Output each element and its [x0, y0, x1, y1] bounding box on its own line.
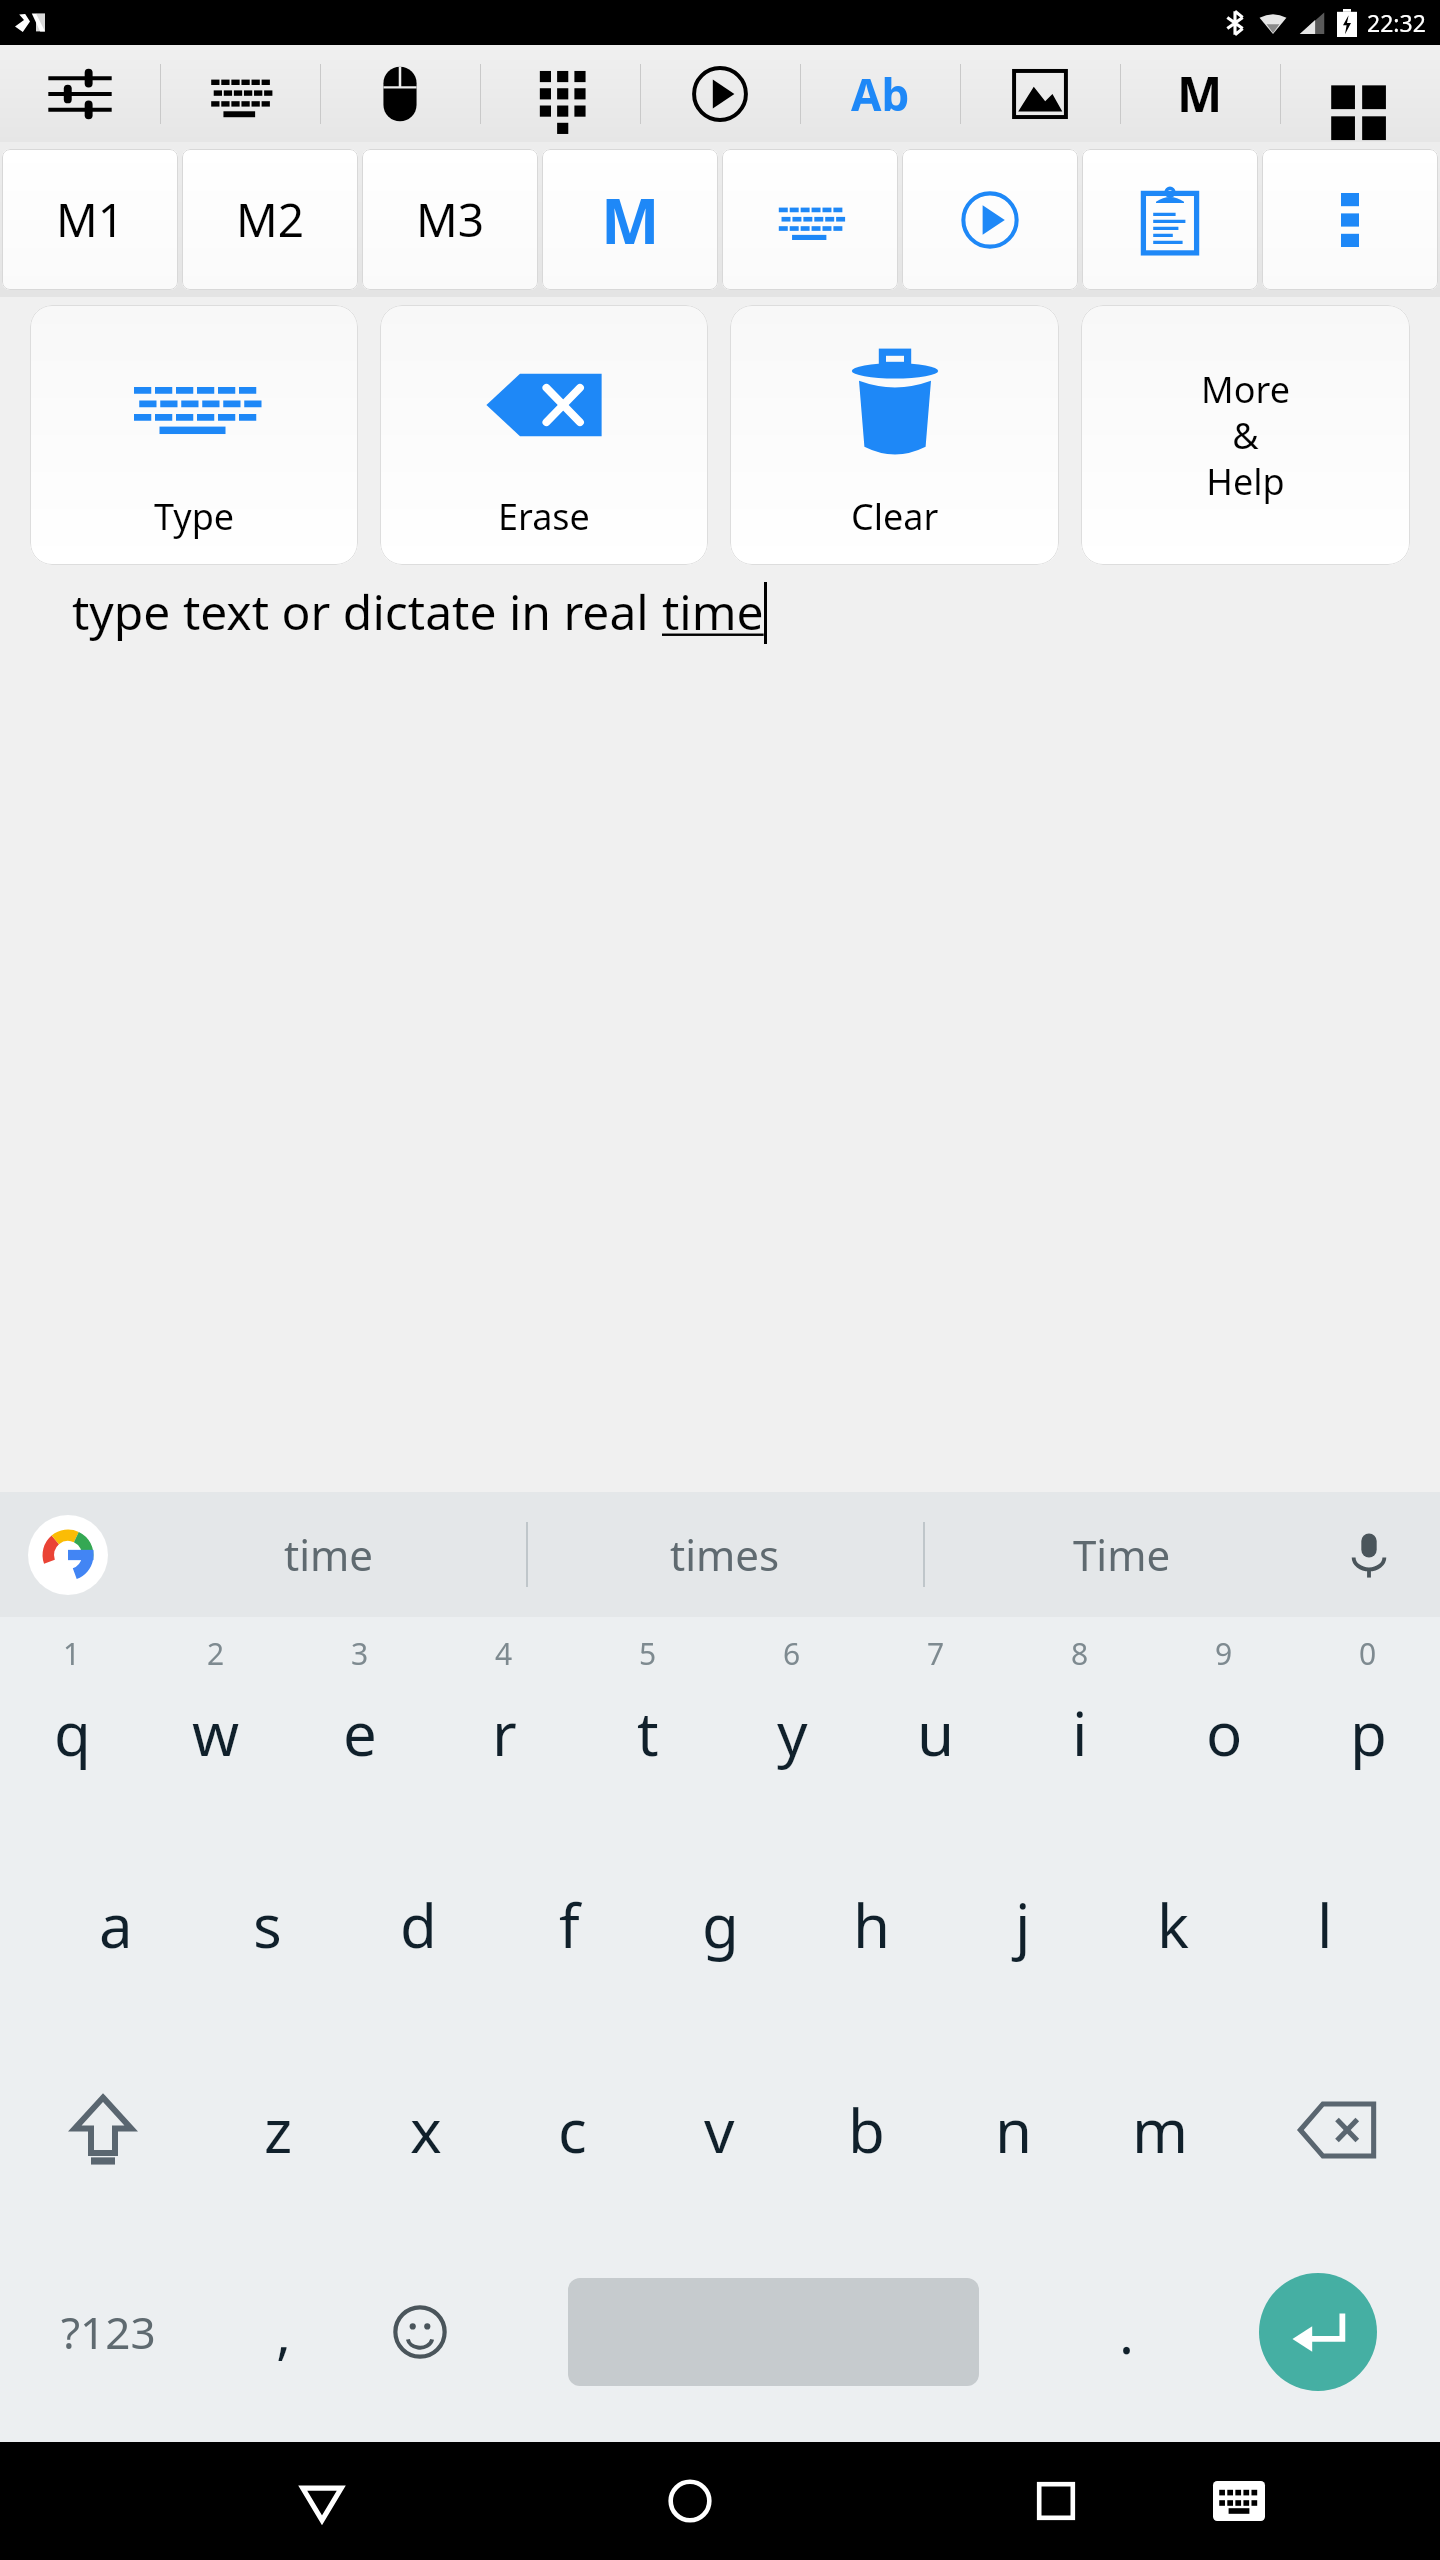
- button[interactable]: 9: [1152, 1617, 1296, 1822]
- staticText: ,: [276, 2294, 292, 2370]
- staticText: c: [558, 2089, 587, 2171]
- button[interactable]: Macro: [542, 149, 718, 290]
- button[interactable]: d: [343, 1822, 494, 2027]
- staticText: g: [702, 1884, 739, 1966]
- button[interactable]: b: [793, 2027, 940, 2232]
- button[interactable]: Switch keyboard: [1147, 2442, 1330, 2560]
- button[interactable]: Keyboard: [160, 45, 320, 142]
- button[interactable]: l: [1249, 1822, 1400, 2027]
- button[interactable]: c: [499, 2027, 646, 2232]
- staticText: x: [410, 2089, 442, 2171]
- staticText: o: [1206, 1692, 1243, 1774]
- staticText: time: [284, 1526, 373, 1583]
- button[interactable]: 4: [432, 1617, 576, 1822]
- button[interactable]: n: [940, 2027, 1087, 2232]
- staticText: 7: [927, 1633, 945, 1674]
- button[interactable]: times: [526, 1492, 923, 1617]
- staticText: M1: [56, 188, 125, 251]
- staticText: i: [1072, 1692, 1088, 1774]
- button[interactable]: .: [1059, 2232, 1195, 2432]
- staticText: b: [848, 2089, 885, 2171]
- button[interactable]: Recents: [964, 2442, 1147, 2560]
- button[interactable]: 7: [864, 1617, 1008, 1822]
- button[interactable]: Mouse: [320, 45, 480, 142]
- staticText: f: [559, 1884, 580, 1966]
- staticText: s: [253, 1884, 282, 1966]
- button[interactable]: m: [1087, 2027, 1234, 2232]
- button[interactable]: Backspace: [1234, 2027, 1440, 2232]
- staticText: d: [400, 1884, 437, 1966]
- button[interactable]: 6: [720, 1617, 864, 1822]
- staticText: type text or dictate in real: [72, 579, 662, 644]
- button[interactable]: Play: [902, 149, 1078, 290]
- button[interactable]: 8: [1008, 1617, 1152, 1822]
- button[interactable]: Time: [923, 1492, 1320, 1617]
- button[interactable]: M2: [182, 149, 358, 290]
- button[interactable]: g: [645, 1822, 796, 2027]
- button[interactable]: 0: [1296, 1617, 1440, 1822]
- button[interactable]: Shift: [0, 2027, 205, 2232]
- staticText: Clear: [851, 492, 939, 541]
- staticText: p: [1350, 1692, 1387, 1774]
- button[interactable]: 1: [0, 1617, 144, 1822]
- button[interactable]: ,: [216, 2232, 352, 2432]
- staticText: Time: [1073, 1526, 1171, 1583]
- button[interactable]: j: [947, 1822, 1098, 2027]
- button[interactable]: M1: [2, 149, 178, 290]
- button[interactable]: Space: [488, 2232, 1059, 2432]
- button[interactable]: Erase: [380, 305, 708, 565]
- button[interactable]: More options: [1262, 149, 1438, 290]
- staticText: 3: [351, 1633, 369, 1674]
- button[interactable]: s: [192, 1822, 343, 2027]
- button[interactable]: k: [1098, 1822, 1249, 2027]
- button[interactable]: Enter: [1195, 2232, 1440, 2432]
- button[interactable]: z: [205, 2027, 352, 2232]
- staticText: .: [1119, 2294, 1135, 2370]
- button[interactable]: f: [494, 1822, 645, 2027]
- button[interactable]: v: [646, 2027, 793, 2232]
- button[interactable]: x: [352, 2027, 499, 2232]
- button[interactable]: Settings: [0, 45, 160, 142]
- button[interactable]: Macro: [1120, 45, 1280, 142]
- staticText: 2: [207, 1633, 225, 1674]
- button[interactable]: Keyboard: [722, 149, 898, 290]
- staticText: k: [1157, 1884, 1190, 1966]
- button[interactable]: Clear: [730, 305, 1059, 565]
- button[interactable]: Google: [28, 1515, 108, 1595]
- button[interactable]: Clipboard: [1082, 149, 1258, 290]
- button[interactable]: More & Help: [1081, 305, 1410, 565]
- staticText: Type: [154, 492, 235, 541]
- button[interactable]: 5: [576, 1617, 720, 1822]
- button[interactable]: a: [40, 1822, 192, 2027]
- staticText: e: [343, 1692, 377, 1774]
- staticText: n: [995, 2089, 1033, 2171]
- button[interactable]: M3: [362, 149, 538, 290]
- staticText: 9: [1215, 1633, 1233, 1674]
- button[interactable]: Numpad: [480, 45, 640, 142]
- button[interactable]: Play: [640, 45, 800, 142]
- button[interactable]: Image: [960, 45, 1120, 142]
- button[interactable]: Home: [598, 2442, 781, 2560]
- button[interactable]: Back: [230, 2442, 414, 2560]
- button[interactable]: Grid: [1280, 45, 1440, 142]
- staticText: j: [1015, 1884, 1031, 1966]
- staticText: y: [777, 1692, 808, 1774]
- button[interactable]: ?123: [0, 2232, 216, 2432]
- staticText: u: [917, 1692, 955, 1774]
- staticText: times: [670, 1526, 780, 1583]
- staticText: q: [54, 1692, 91, 1774]
- button[interactable]: h: [796, 1822, 947, 2027]
- button[interactable]: 3: [288, 1617, 432, 1822]
- button[interactable]: Type: [30, 305, 358, 565]
- button[interactable]: Emoji: [352, 2232, 488, 2432]
- staticText: M3: [416, 188, 485, 251]
- staticText: More & Help: [1201, 365, 1290, 506]
- staticText: Erase: [498, 492, 590, 541]
- staticText: h: [853, 1884, 891, 1966]
- button[interactable]: 2: [144, 1617, 288, 1822]
- button[interactable]: Text style: [800, 45, 960, 142]
- staticText: w: [192, 1692, 240, 1774]
- button[interactable]: time: [130, 1492, 526, 1617]
- staticText: 1: [63, 1633, 81, 1674]
- button[interactable]: Voice input: [1334, 1520, 1404, 1590]
